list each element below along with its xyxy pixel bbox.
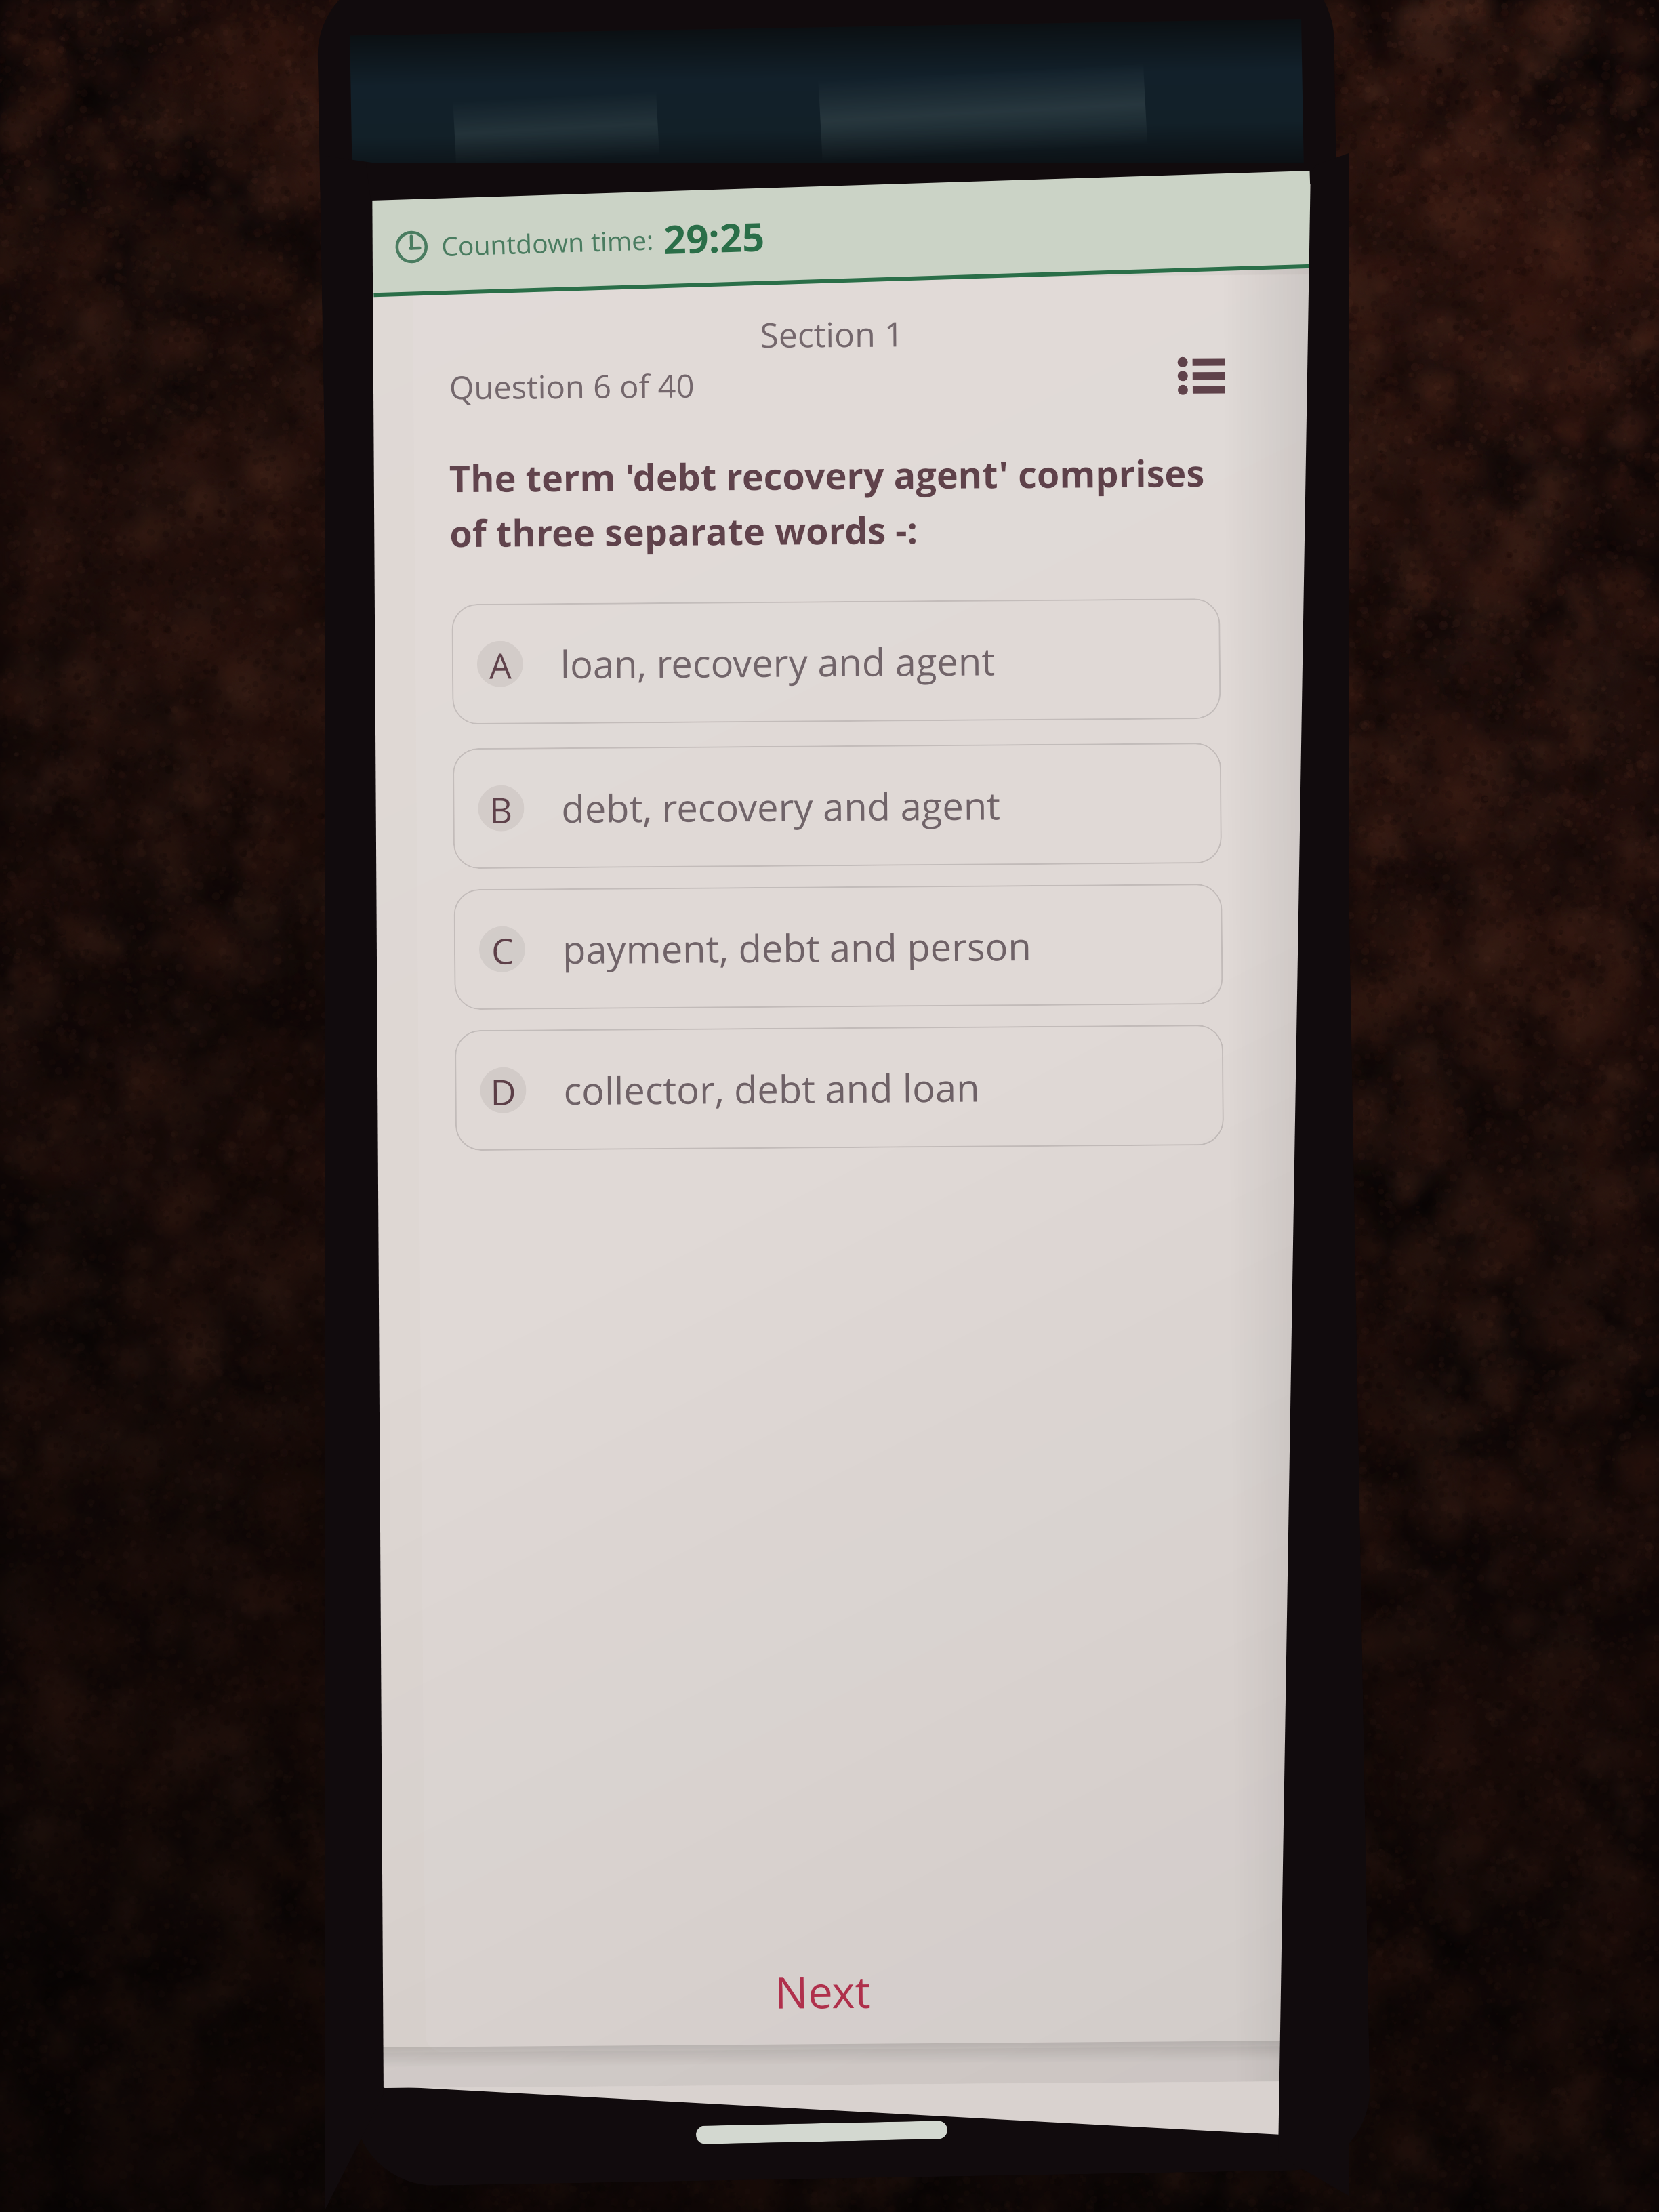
staticText: collector, debt and loan xyxy=(563,1061,980,1116)
staticText: Section 1 xyxy=(369,308,1306,361)
button[interactable]: Next xyxy=(745,1943,901,2039)
staticText: D xyxy=(490,1067,516,1113)
button[interactable]: D xyxy=(455,1025,1224,1151)
staticText: Countdown time: xyxy=(441,221,655,264)
staticText: B xyxy=(489,785,513,831)
button[interactable]: Question list xyxy=(1170,345,1233,408)
staticText: 29:25 xyxy=(663,209,765,266)
button[interactable]: A xyxy=(451,598,1221,725)
staticText: C xyxy=(491,926,514,972)
staticText: The term 'debt recovery agent' comprises… xyxy=(449,447,1205,557)
button[interactable]: B xyxy=(453,743,1222,869)
staticText: Question 6 of 40 xyxy=(449,364,695,409)
staticText: payment, debt and person xyxy=(562,920,1032,975)
staticText: loan, recovery and agent xyxy=(560,635,996,689)
staticText: Next xyxy=(775,1961,871,2022)
staticText: A xyxy=(489,641,512,687)
staticText: debt, recovery and agent xyxy=(561,779,1001,834)
button[interactable]: C xyxy=(454,884,1223,1010)
